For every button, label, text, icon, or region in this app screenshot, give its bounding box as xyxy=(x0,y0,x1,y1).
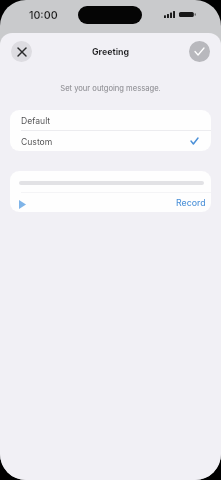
staticText: Set your outgoing message. xyxy=(0,84,221,93)
button[interactable]: Custom xyxy=(10,132,211,151)
staticText: 10:00 xyxy=(29,9,58,22)
button[interactable]: Record xyxy=(176,197,206,208)
button[interactable]: Play xyxy=(15,197,29,211)
staticText: Greeting xyxy=(92,46,130,57)
staticText: Record xyxy=(176,197,206,208)
button[interactable]: Done xyxy=(189,41,210,62)
button[interactable]: Close xyxy=(11,41,32,62)
button[interactable]: Default xyxy=(10,111,211,131)
staticText: Default xyxy=(21,116,51,126)
staticText: Custom xyxy=(21,137,53,147)
